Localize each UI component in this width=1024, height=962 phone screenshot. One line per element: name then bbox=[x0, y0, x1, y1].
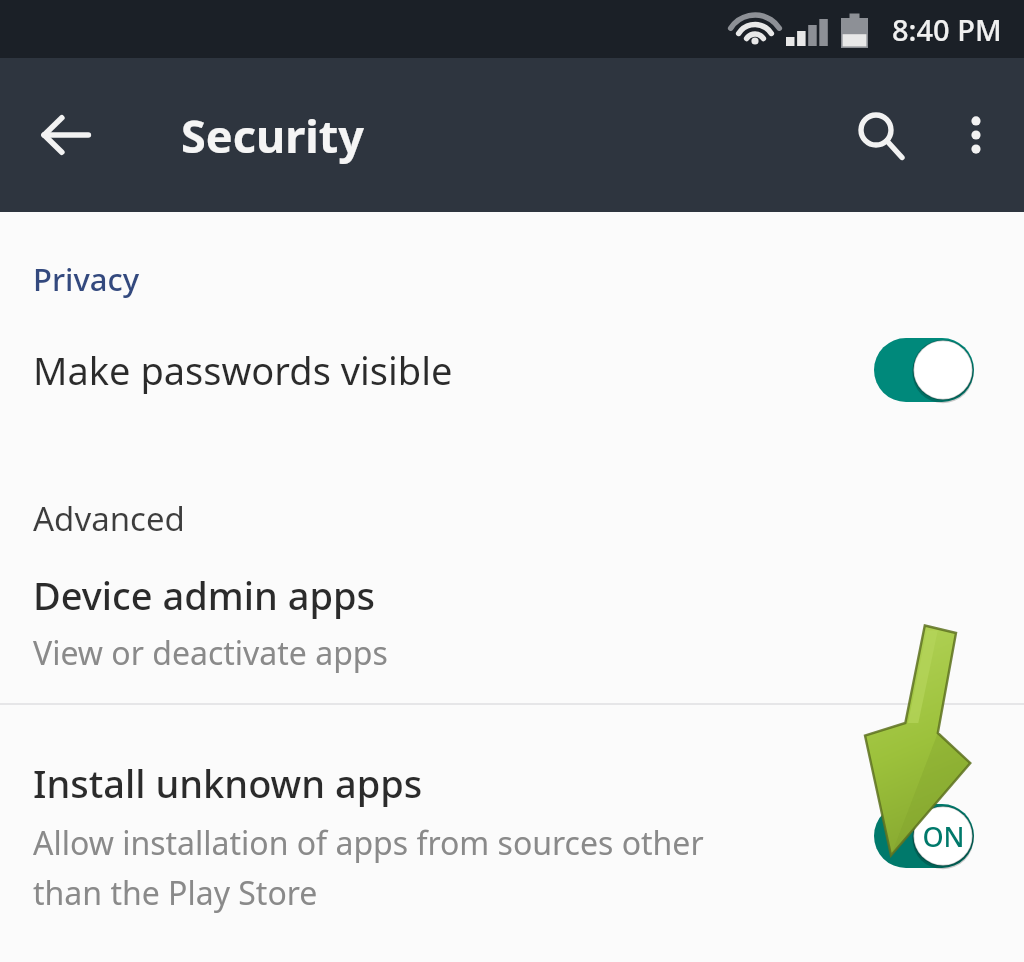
staticText: Security bbox=[181, 105, 364, 166]
button[interactable]: Make passwords visible bbox=[0, 310, 1024, 430]
staticText: Device admin apps bbox=[33, 569, 376, 621]
staticText: Privacy bbox=[33, 258, 140, 300]
button[interactable]: Toggle bbox=[874, 337, 974, 403]
staticText: Advanced bbox=[33, 496, 185, 541]
button[interactable]: Install unknown apps bbox=[0, 705, 1024, 915]
staticText: View or deactivate apps bbox=[33, 631, 388, 675]
staticText: than the Play Store bbox=[33, 871, 318, 915]
staticText: Make passwords visible bbox=[33, 344, 874, 396]
button[interactable]: Toggle on bbox=[874, 803, 974, 869]
button[interactable]: Search bbox=[832, 87, 928, 183]
staticText: Install unknown apps bbox=[33, 757, 423, 809]
staticText: ON bbox=[922, 818, 965, 855]
button[interactable]: Back bbox=[20, 89, 112, 181]
button[interactable]: Device admin apps bbox=[0, 555, 1024, 703]
button[interactable]: More options bbox=[928, 87, 1024, 183]
staticText: Allow installation of apps from sources … bbox=[33, 821, 704, 865]
staticText: 8:40 PM bbox=[892, 10, 1002, 49]
